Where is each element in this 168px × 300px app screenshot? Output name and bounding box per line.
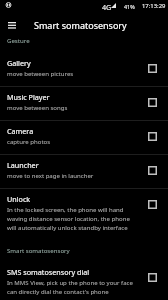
button[interactable]: Toggle Launcher — [146, 164, 159, 177]
staticText: 41% — [124, 3, 135, 10]
button[interactable]: Unlock — [0, 188, 168, 236]
staticText: Music Player — [7, 92, 50, 102]
staticText: move between songs — [7, 104, 68, 112]
button[interactable]: SMS somatosensory dial — [0, 261, 168, 300]
button[interactable]: Toggle Gallery — [146, 62, 159, 75]
staticText: move to next page in launcher — [7, 172, 94, 180]
button[interactable]: Toggle Music Player — [146, 96, 159, 109]
staticText: Gallery — [7, 58, 31, 68]
staticText: capture photos — [7, 138, 51, 146]
staticText: 4G — [102, 2, 112, 12]
button[interactable]: Launcher — [0, 154, 168, 188]
button[interactable]: Toggle Unlock — [146, 198, 159, 211]
staticText: Smart somatosensory — [7, 246, 70, 254]
staticText: In MMS View, pick up the phone to your f… — [7, 279, 135, 296]
staticText: SMS somatosensory dial — [7, 267, 90, 277]
staticText: Unlock — [7, 194, 31, 204]
staticText: Smart somatosensory — [34, 19, 127, 31]
staticText: move between pictures — [7, 70, 74, 78]
button[interactable]: Open navigation menu — [0, 15, 25, 35]
button[interactable]: Camera — [0, 120, 168, 154]
staticText: In the locked screen, the phone will han… — [7, 206, 135, 232]
staticText: Gesture — [7, 36, 30, 44]
button[interactable]: Toggle SMS somatosensory dial — [146, 271, 159, 284]
button[interactable]: Gallery — [0, 52, 168, 86]
staticText: Launcher — [7, 160, 39, 170]
staticText: Camera — [7, 126, 34, 136]
staticText: 17:13:29 — [142, 2, 166, 10]
button[interactable]: Toggle Camera — [146, 130, 159, 143]
button[interactable]: Music Player — [0, 86, 168, 120]
